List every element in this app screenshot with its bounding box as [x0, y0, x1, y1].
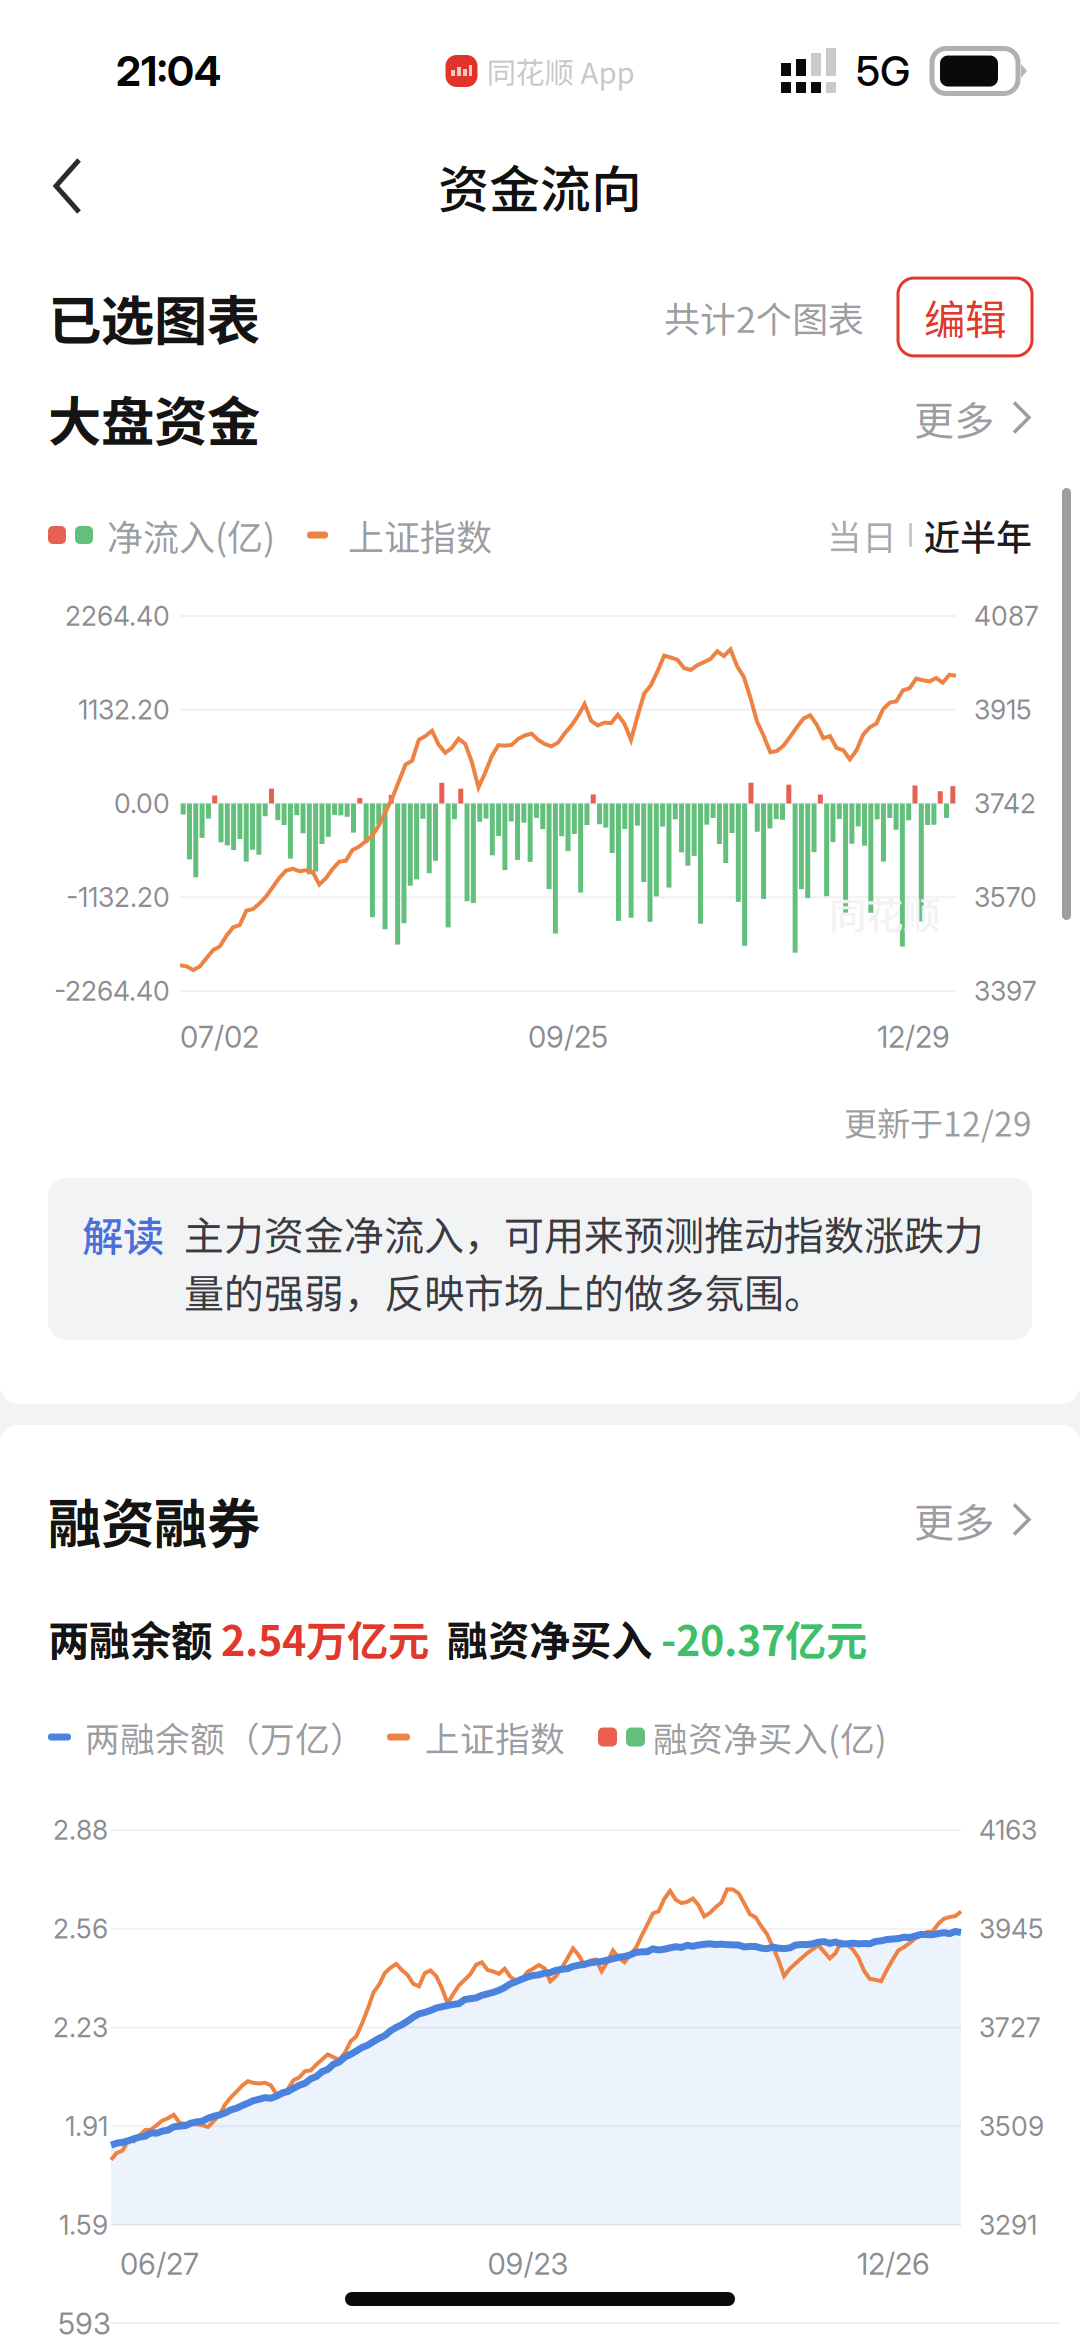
staticText: 大盘资金: [48, 379, 260, 457]
staticText: 上证指数: [425, 1712, 565, 1762]
staticText: -20.37亿元: [661, 1608, 867, 1668]
button[interactable]: 当日: [827, 510, 897, 560]
staticText: 融资净买入: [429, 1608, 661, 1668]
staticText: 3945: [979, 1913, 1044, 1945]
staticText: 3742: [974, 787, 1036, 820]
staticText: 编辑: [924, 287, 1006, 347]
staticText: 上证指数: [348, 509, 492, 561]
staticText: 2.23: [53, 2011, 108, 2044]
staticText: 2.54万亿元: [221, 1608, 429, 1668]
staticText: 3291: [979, 2209, 1037, 2241]
button[interactable]: 近半年: [924, 509, 1032, 561]
staticText: 解读: [82, 1204, 164, 1264]
staticText: -2264.40: [54, 975, 170, 1007]
button[interactable]: 返回: [0, 130, 120, 242]
staticText: 07/02: [180, 1019, 259, 1055]
staticText: 更多: [914, 389, 994, 447]
staticText: 当日: [827, 510, 897, 560]
staticText: 2.88: [53, 1814, 108, 1846]
staticText: 3727: [979, 2011, 1041, 2044]
staticText: 06/27: [120, 2246, 199, 2282]
staticText: 09/25: [528, 1019, 608, 1055]
staticText: 融资融券: [48, 1481, 260, 1559]
staticText: 两融余额: [48, 1608, 221, 1668]
staticText: 09/23: [487, 2246, 568, 2282]
staticText: -1132.20: [66, 881, 170, 913]
staticText: 同花顺 App: [486, 50, 634, 92]
staticText: 3915: [974, 694, 1032, 726]
staticText: 1.59: [59, 2209, 108, 2241]
staticText: 主力资金净流入，可用来预测推动指数涨跌力量的强弱，反映市场上的做多氛围。: [184, 1204, 984, 1320]
staticText: 3397: [974, 975, 1037, 1007]
button[interactable]: 更多: [914, 1491, 1032, 1549]
staticText: 更多: [914, 1491, 994, 1549]
staticText: 3570: [974, 881, 1037, 913]
staticText: 3509: [979, 2110, 1044, 2142]
staticText: 1132.20: [78, 694, 170, 726]
staticText: 2.56: [53, 1913, 108, 1945]
staticText: 5G: [856, 46, 910, 96]
staticText: 21:04: [116, 46, 221, 96]
staticText: 已选图表: [48, 278, 260, 356]
button[interactable]: 编辑: [898, 278, 1032, 356]
staticText: 12/29: [877, 1019, 950, 1055]
staticText: 两融余额（万亿）: [85, 1712, 365, 1762]
staticText: 共计2个图表: [664, 291, 864, 343]
staticText: 资金流向: [438, 149, 642, 223]
staticText: 4087: [974, 600, 1039, 632]
staticText: 0.00: [114, 787, 170, 820]
staticText: 更新于12/29: [844, 1098, 1032, 1146]
staticText: 同花顺: [829, 886, 940, 940]
button[interactable]: 更多: [914, 389, 1032, 447]
staticText: 4163: [979, 1814, 1037, 1846]
staticText: 593: [58, 2306, 111, 2338]
staticText: 融资净买入(亿): [653, 1712, 887, 1762]
staticText: 2264.40: [65, 600, 170, 632]
staticText: 净流入(亿): [107, 509, 275, 561]
staticText: 12/26: [857, 2246, 930, 2282]
staticText: 1.91: [65, 2110, 108, 2142]
staticText: 近半年: [924, 509, 1032, 561]
